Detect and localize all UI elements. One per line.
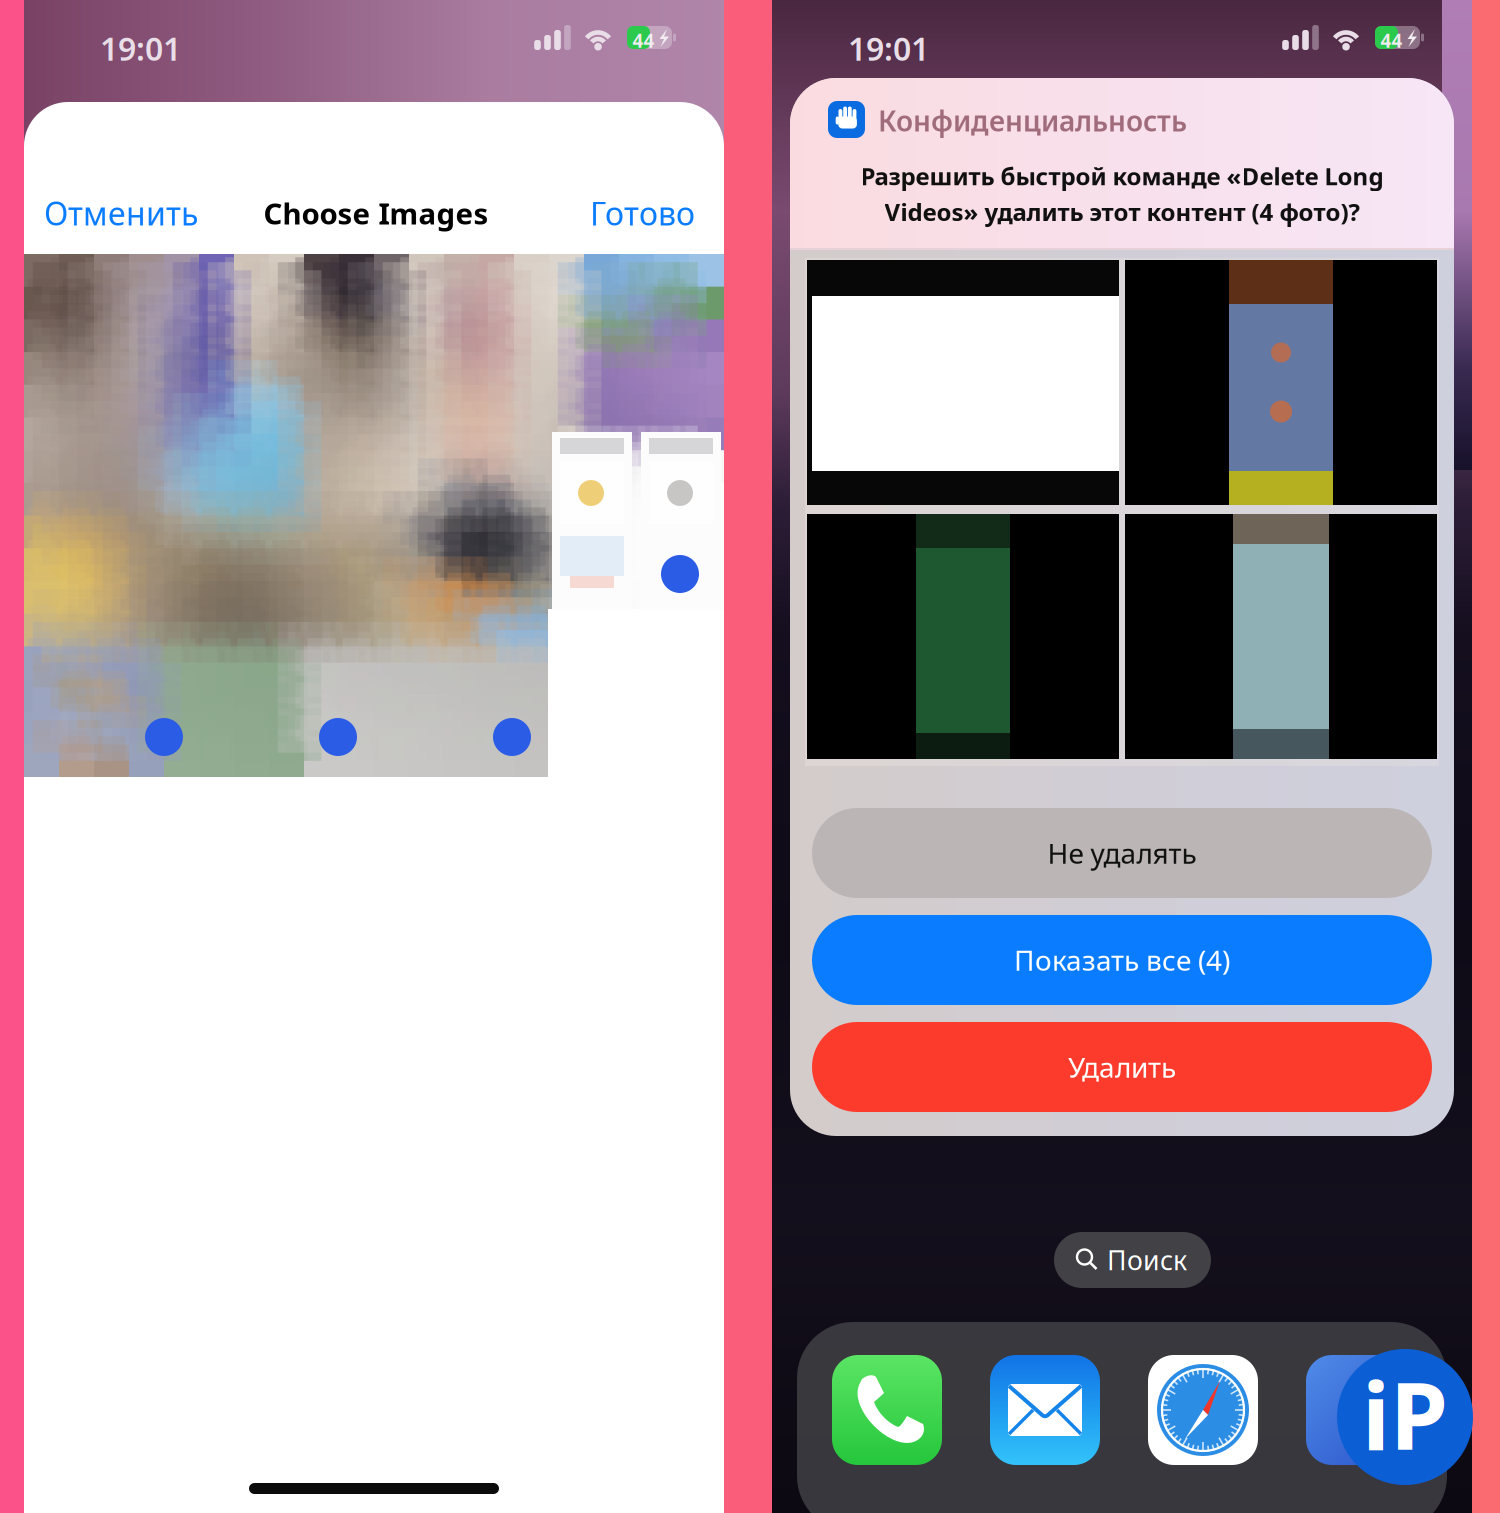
staticText: Готово [590,192,695,234]
staticText: Choose Images [263,193,488,232]
staticText: Не удалять [1047,834,1196,872]
staticText: Разрешить быстрой команде «Delete Long [860,160,1383,192]
button[interactable]: Safari [1148,1355,1258,1465]
staticText: Показать все (4) [1014,941,1230,979]
button[interactable]: Показать все (4) [812,915,1432,1005]
button[interactable]: Отменить [44,183,234,243]
button[interactable]: Поиск [1054,1232,1211,1288]
staticText: 44 [632,28,654,53]
staticText: 19:01 [100,27,181,69]
staticText: Videos» удалить этот контент (4 фото)? [884,196,1359,228]
button[interactable]: Готово [535,183,695,243]
staticText: Удалить [1068,1048,1176,1086]
staticText: iP [1362,1352,1448,1476]
staticText: 19:01 [848,27,929,69]
button[interactable]: Удалить [812,1022,1432,1112]
button[interactable]: Phone [832,1355,942,1465]
staticText: Поиск [1107,1242,1187,1278]
button[interactable]: App [1306,1355,1416,1465]
staticText: 44 [1380,28,1402,53]
staticText: Отменить [44,192,198,234]
button[interactable]: Mail [990,1355,1100,1465]
button[interactable]: Не удалять [812,808,1432,898]
staticText: Конфиденциальность [878,102,1187,139]
